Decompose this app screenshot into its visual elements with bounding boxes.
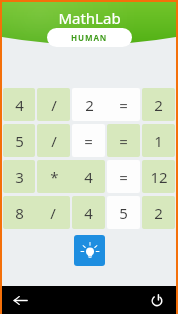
button[interactable]: * (37, 160, 105, 193)
staticText: 4 (15, 95, 24, 115)
button[interactable]: = (72, 124, 105, 157)
staticText: / (50, 203, 56, 223)
button[interactable]: Hint (74, 235, 105, 266)
button[interactable]: 2 (142, 88, 175, 121)
staticText: MathLab (58, 8, 121, 28)
button[interactable]: Back (8, 288, 32, 312)
staticText: / (51, 95, 57, 115)
staticText: 3 (15, 167, 24, 187)
staticText: 4 (84, 167, 93, 187)
staticText: 2 (154, 203, 163, 223)
button[interactable]: HUMAN (47, 28, 132, 47)
staticText: / (51, 131, 57, 151)
staticText: 12 (150, 167, 168, 187)
button[interactable]: 5 (3, 124, 35, 157)
staticText: = (119, 95, 128, 115)
staticText: 1 (154, 131, 163, 151)
button[interactable]: 4 (3, 88, 35, 121)
staticText: = (84, 131, 93, 151)
button[interactable]: 12 (142, 160, 175, 193)
staticText: = (119, 167, 128, 187)
staticText: 4 (84, 203, 93, 223)
staticText: * (50, 167, 59, 187)
button[interactable]: 4 (72, 196, 105, 229)
button[interactable]: 5 (107, 196, 140, 229)
button[interactable]: / (37, 88, 70, 121)
button[interactable]: 3 (3, 160, 35, 193)
staticText: 5 (119, 203, 128, 223)
button[interactable]: Restart (145, 288, 169, 312)
button[interactable]: / (37, 124, 70, 157)
button[interactable]: 1 (142, 124, 175, 157)
staticText: 8 (15, 203, 24, 223)
button[interactable]: 2 (72, 88, 140, 121)
button[interactable]: 2 (142, 196, 175, 229)
button[interactable]: = (107, 124, 140, 157)
staticText: = (119, 131, 128, 151)
button[interactable]: = (107, 160, 140, 193)
staticText: 2 (154, 95, 163, 115)
staticText: 2 (85, 95, 94, 115)
button[interactable]: 8 (3, 196, 70, 229)
staticText: 5 (15, 131, 24, 151)
staticText: HUMAN (71, 32, 108, 43)
